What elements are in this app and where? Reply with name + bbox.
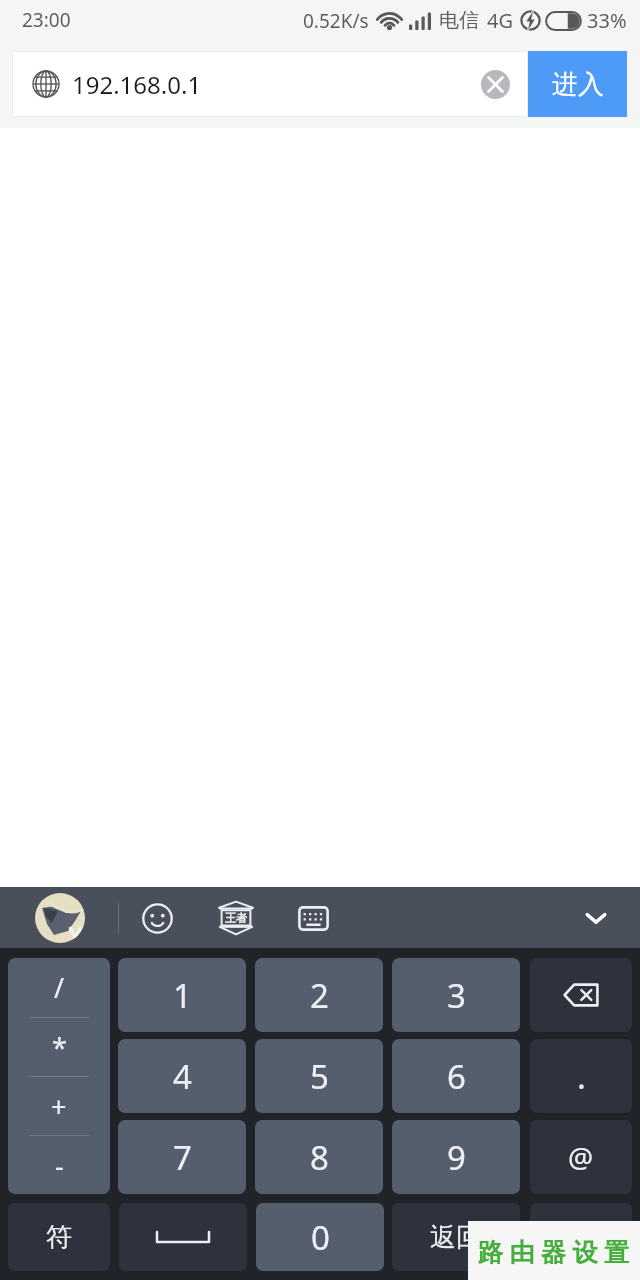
staticText: / (54, 969, 65, 1006)
button[interactable]: Hide keyboard (576, 898, 616, 938)
staticText: 7 (173, 1135, 192, 1180)
staticText: + (51, 1088, 67, 1125)
staticText: 电信 (439, 8, 479, 33)
button[interactable]: Theme (216, 898, 256, 938)
button[interactable]: Profile (35, 893, 85, 943)
staticText: 路 由 器 设 置 (478, 1234, 630, 1268)
staticText: 0.52K/s (303, 8, 369, 34)
button[interactable]: 返回 (392, 1203, 520, 1271)
button[interactable]: Space (119, 1203, 247, 1271)
button[interactable]: Switch keyboard (293, 898, 333, 938)
staticText: 符 (46, 1221, 72, 1254)
button[interactable]: Emoji (137, 898, 177, 938)
button[interactable]: . (530, 1039, 632, 1113)
button[interactable]: 3 (392, 958, 520, 1032)
staticText: * (52, 1029, 67, 1066)
staticText: 192.168.0.1 (72, 68, 202, 101)
button[interactable]: 192.168.0.1 (12, 51, 528, 117)
button[interactable]: 5 (255, 1039, 383, 1113)
staticText: 8 (310, 1135, 329, 1180)
staticText: 1 (173, 973, 192, 1018)
button[interactable]: Enter (530, 1203, 632, 1271)
staticText: 4 (173, 1054, 192, 1099)
staticText: 返回 (430, 1221, 482, 1254)
button[interactable]: 4 (118, 1039, 246, 1113)
staticText: @ (568, 1138, 594, 1176)
staticText: 4G (487, 7, 513, 34)
staticText: 5 (310, 1054, 329, 1099)
button[interactable]: @ (530, 1120, 632, 1194)
staticText: 2 (310, 973, 329, 1018)
staticText: 6 (447, 1054, 466, 1099)
button[interactable]: 6 (392, 1039, 520, 1113)
button[interactable]: 8 (255, 1120, 383, 1194)
staticText: 0 (311, 1215, 330, 1260)
button[interactable]: 7 (118, 1120, 246, 1194)
staticText: 3 (447, 973, 466, 1018)
button[interactable]: Clear text (480, 69, 510, 99)
staticText: - (55, 1147, 64, 1184)
button[interactable]: 2 (255, 958, 383, 1032)
button[interactable]: 0 (256, 1203, 384, 1271)
staticText: 进入 (552, 68, 604, 101)
staticText: . (577, 1054, 586, 1099)
button[interactable]: 符 (8, 1203, 110, 1271)
button[interactable]: 进入 (528, 51, 627, 117)
staticText: 9 (447, 1135, 466, 1180)
staticText: 23:00 (22, 7, 71, 33)
button[interactable]: Backspace (530, 958, 632, 1032)
button[interactable]: 1 (118, 958, 246, 1032)
button[interactable]: 9 (392, 1120, 520, 1194)
staticText: 33% (587, 7, 627, 34)
staticText: 王者 (225, 911, 247, 925)
button[interactable]: / (8, 958, 110, 1194)
